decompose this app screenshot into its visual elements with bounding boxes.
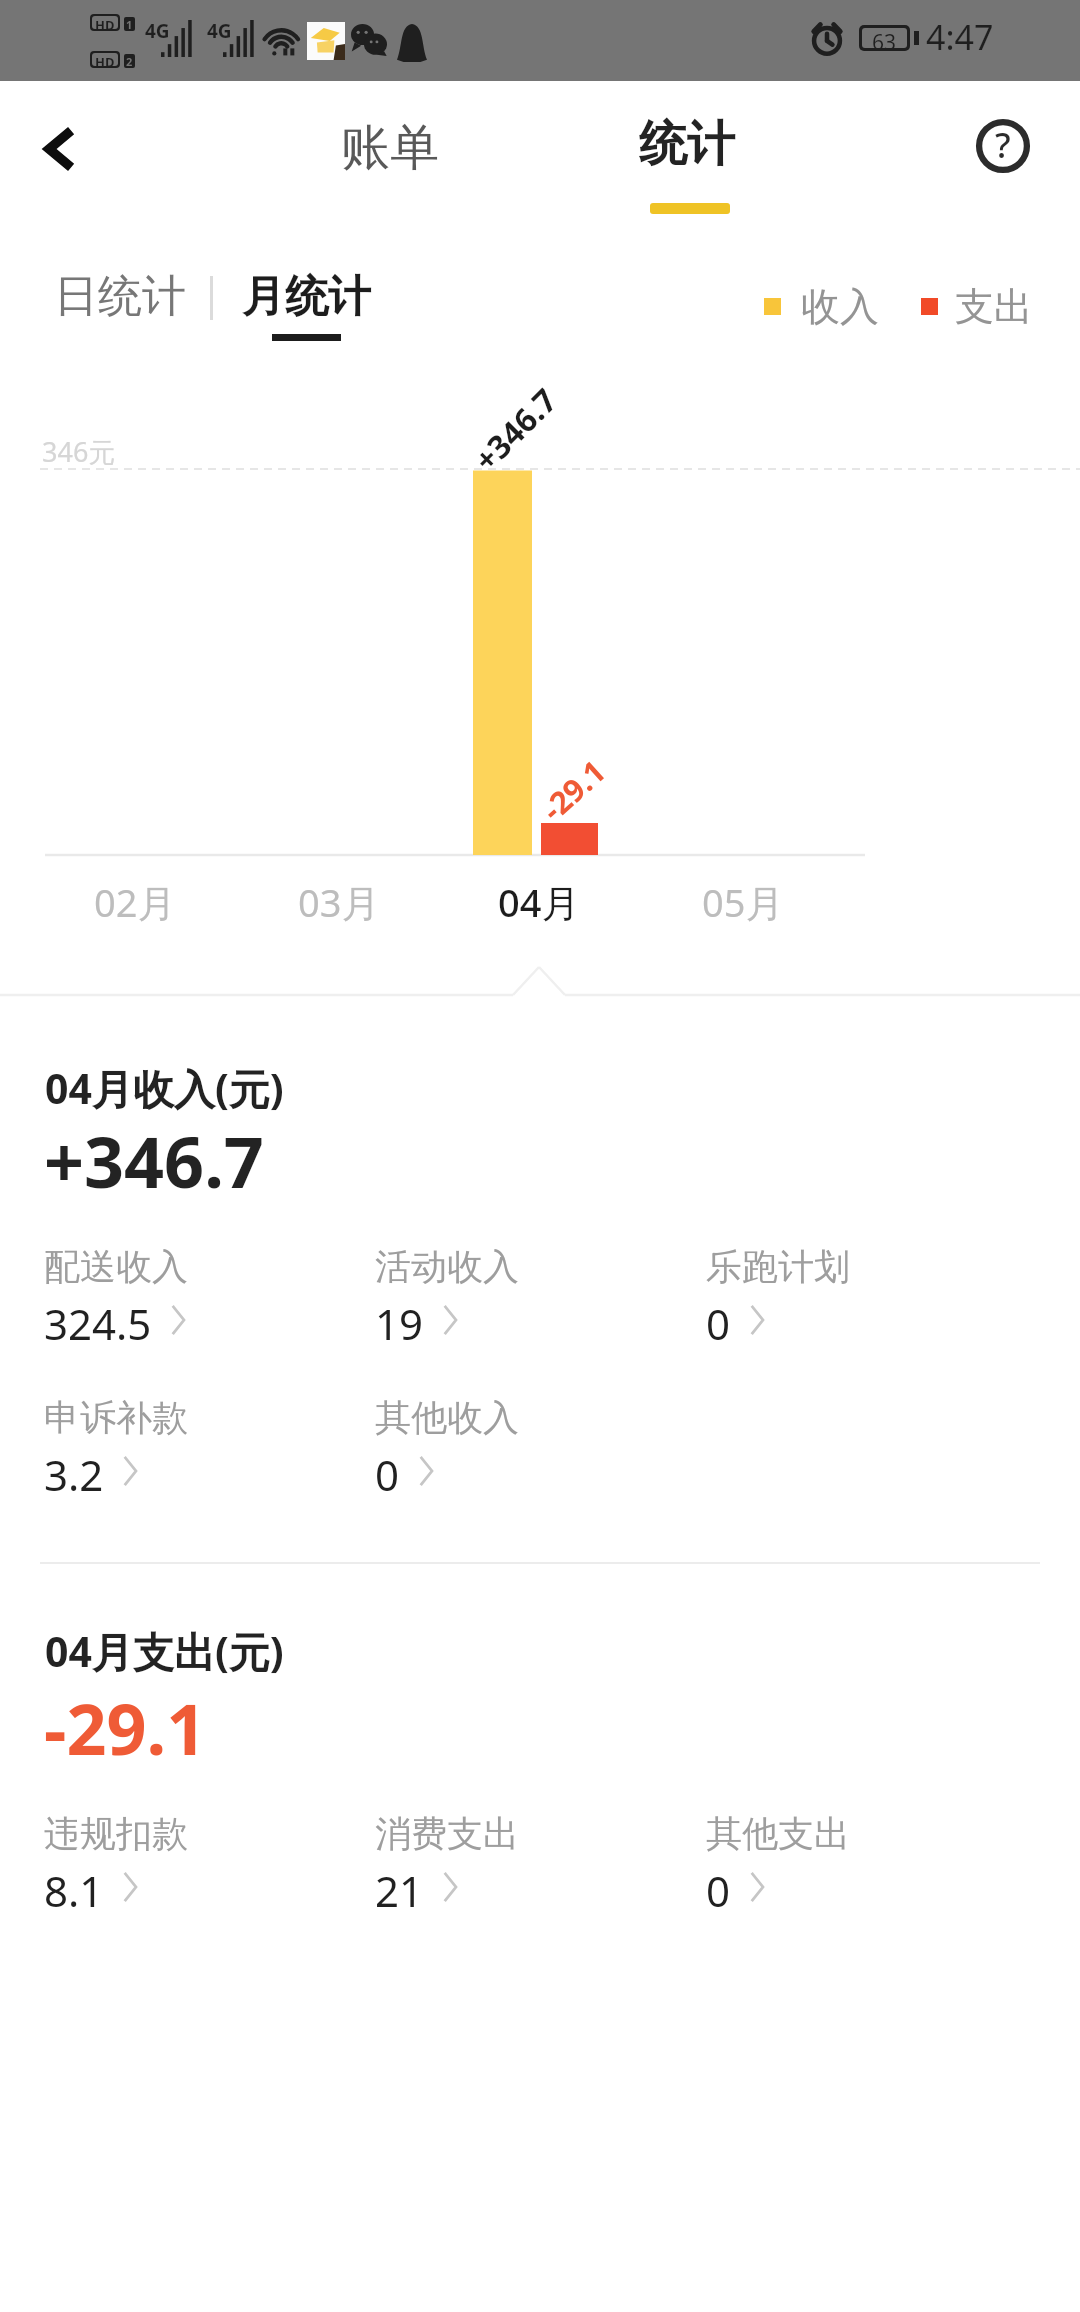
staticText: 4G xyxy=(145,18,170,44)
staticText: ? xyxy=(995,121,1011,169)
staticText: 0 xyxy=(706,1862,731,1911)
staticText: 05月 xyxy=(702,876,784,928)
staticText: -29.1 xyxy=(44,1680,207,1775)
button[interactable]: 04月 xyxy=(477,868,601,936)
staticText: 2 xyxy=(126,54,133,68)
staticText: 乐跑计划 xyxy=(706,1244,850,1289)
staticText: 收入 xyxy=(801,282,879,331)
staticText: 统计 xyxy=(639,114,735,174)
staticText: HD xyxy=(95,53,115,66)
button[interactable]: 账单 xyxy=(318,105,462,191)
staticText: 其他收入 xyxy=(375,1395,519,1440)
staticText: 违规扣款 xyxy=(44,1811,188,1856)
staticText: 03月 xyxy=(298,876,380,928)
button[interactable]: 日统计 xyxy=(40,258,200,334)
staticText: 21 xyxy=(375,1862,424,1911)
staticText: 账单 xyxy=(341,117,439,179)
staticText: -29.1 xyxy=(532,750,614,830)
button[interactable]: 收入 xyxy=(764,282,1033,331)
staticText: 04月收入(元) xyxy=(45,1060,284,1116)
staticText: 其他支出 xyxy=(706,1811,850,1856)
staticText: 04月支出(元) xyxy=(45,1623,284,1679)
staticText: 月统计 xyxy=(242,270,371,324)
staticText: 324.5 xyxy=(44,1295,152,1344)
button[interactable]: 02月 xyxy=(73,868,197,936)
staticText: HD xyxy=(95,16,115,29)
staticText: 8.1 xyxy=(44,1862,104,1911)
staticText: +346.7 xyxy=(44,1113,264,1208)
staticText: 0 xyxy=(375,1446,400,1495)
button[interactable]: 其他收入 xyxy=(375,1395,706,1495)
staticText: 346元 xyxy=(42,433,116,470)
button[interactable]: 违规扣款 xyxy=(44,1811,375,1911)
staticText: 1 xyxy=(126,17,133,31)
staticText: 0 xyxy=(706,1295,731,1344)
button[interactable]: 05月 xyxy=(681,868,805,936)
staticText: 4:47 xyxy=(926,14,994,60)
button[interactable]: 月统计 xyxy=(226,256,386,354)
button[interactable]: 乐跑计划 xyxy=(706,1244,1037,1344)
button[interactable]: 活动收入 xyxy=(375,1244,706,1344)
staticText: 申诉补款 xyxy=(44,1395,188,1440)
button[interactable]: 申诉补款 xyxy=(44,1395,375,1495)
staticText: 活动收入 xyxy=(375,1244,519,1289)
staticText: 02月 xyxy=(94,876,176,928)
staticText: 消费支出 xyxy=(375,1811,519,1856)
button[interactable]: Help xyxy=(962,105,1044,187)
staticText: 19 xyxy=(375,1295,424,1344)
button[interactable]: Back xyxy=(18,108,100,190)
button[interactable]: 配送收入 xyxy=(44,1244,375,1344)
staticText: +346.7 xyxy=(464,378,567,481)
button[interactable]: 统计 xyxy=(622,100,752,225)
button[interactable]: 消费支出 xyxy=(375,1811,706,1911)
staticText: 04月 xyxy=(498,876,580,928)
staticText: 4G xyxy=(207,18,232,44)
staticText: 配送收入 xyxy=(44,1244,188,1289)
staticText: 支出 xyxy=(955,282,1033,331)
staticText: 3.2 xyxy=(44,1446,104,1495)
button[interactable]: 03月 xyxy=(277,868,401,936)
staticText: 日统计 xyxy=(54,269,186,324)
button[interactable]: 其他支出 xyxy=(706,1811,1037,1911)
staticText: 63 xyxy=(872,28,897,48)
